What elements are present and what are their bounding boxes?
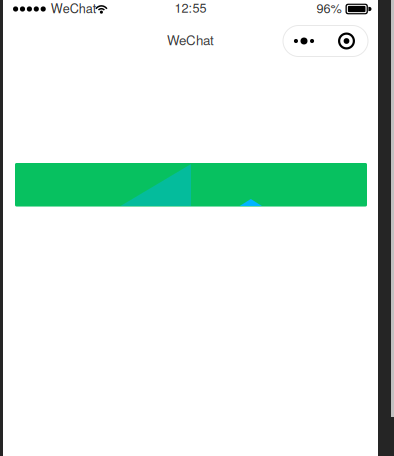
staticText: WeChat bbox=[167, 30, 214, 49]
staticText: WeChat bbox=[51, 0, 97, 17]
button[interactable]: Close mini program bbox=[325, 25, 368, 56]
button[interactable]: More bbox=[283, 25, 325, 56]
staticText: 12:55 bbox=[174, 0, 206, 16]
staticText: 96% bbox=[316, 0, 341, 17]
